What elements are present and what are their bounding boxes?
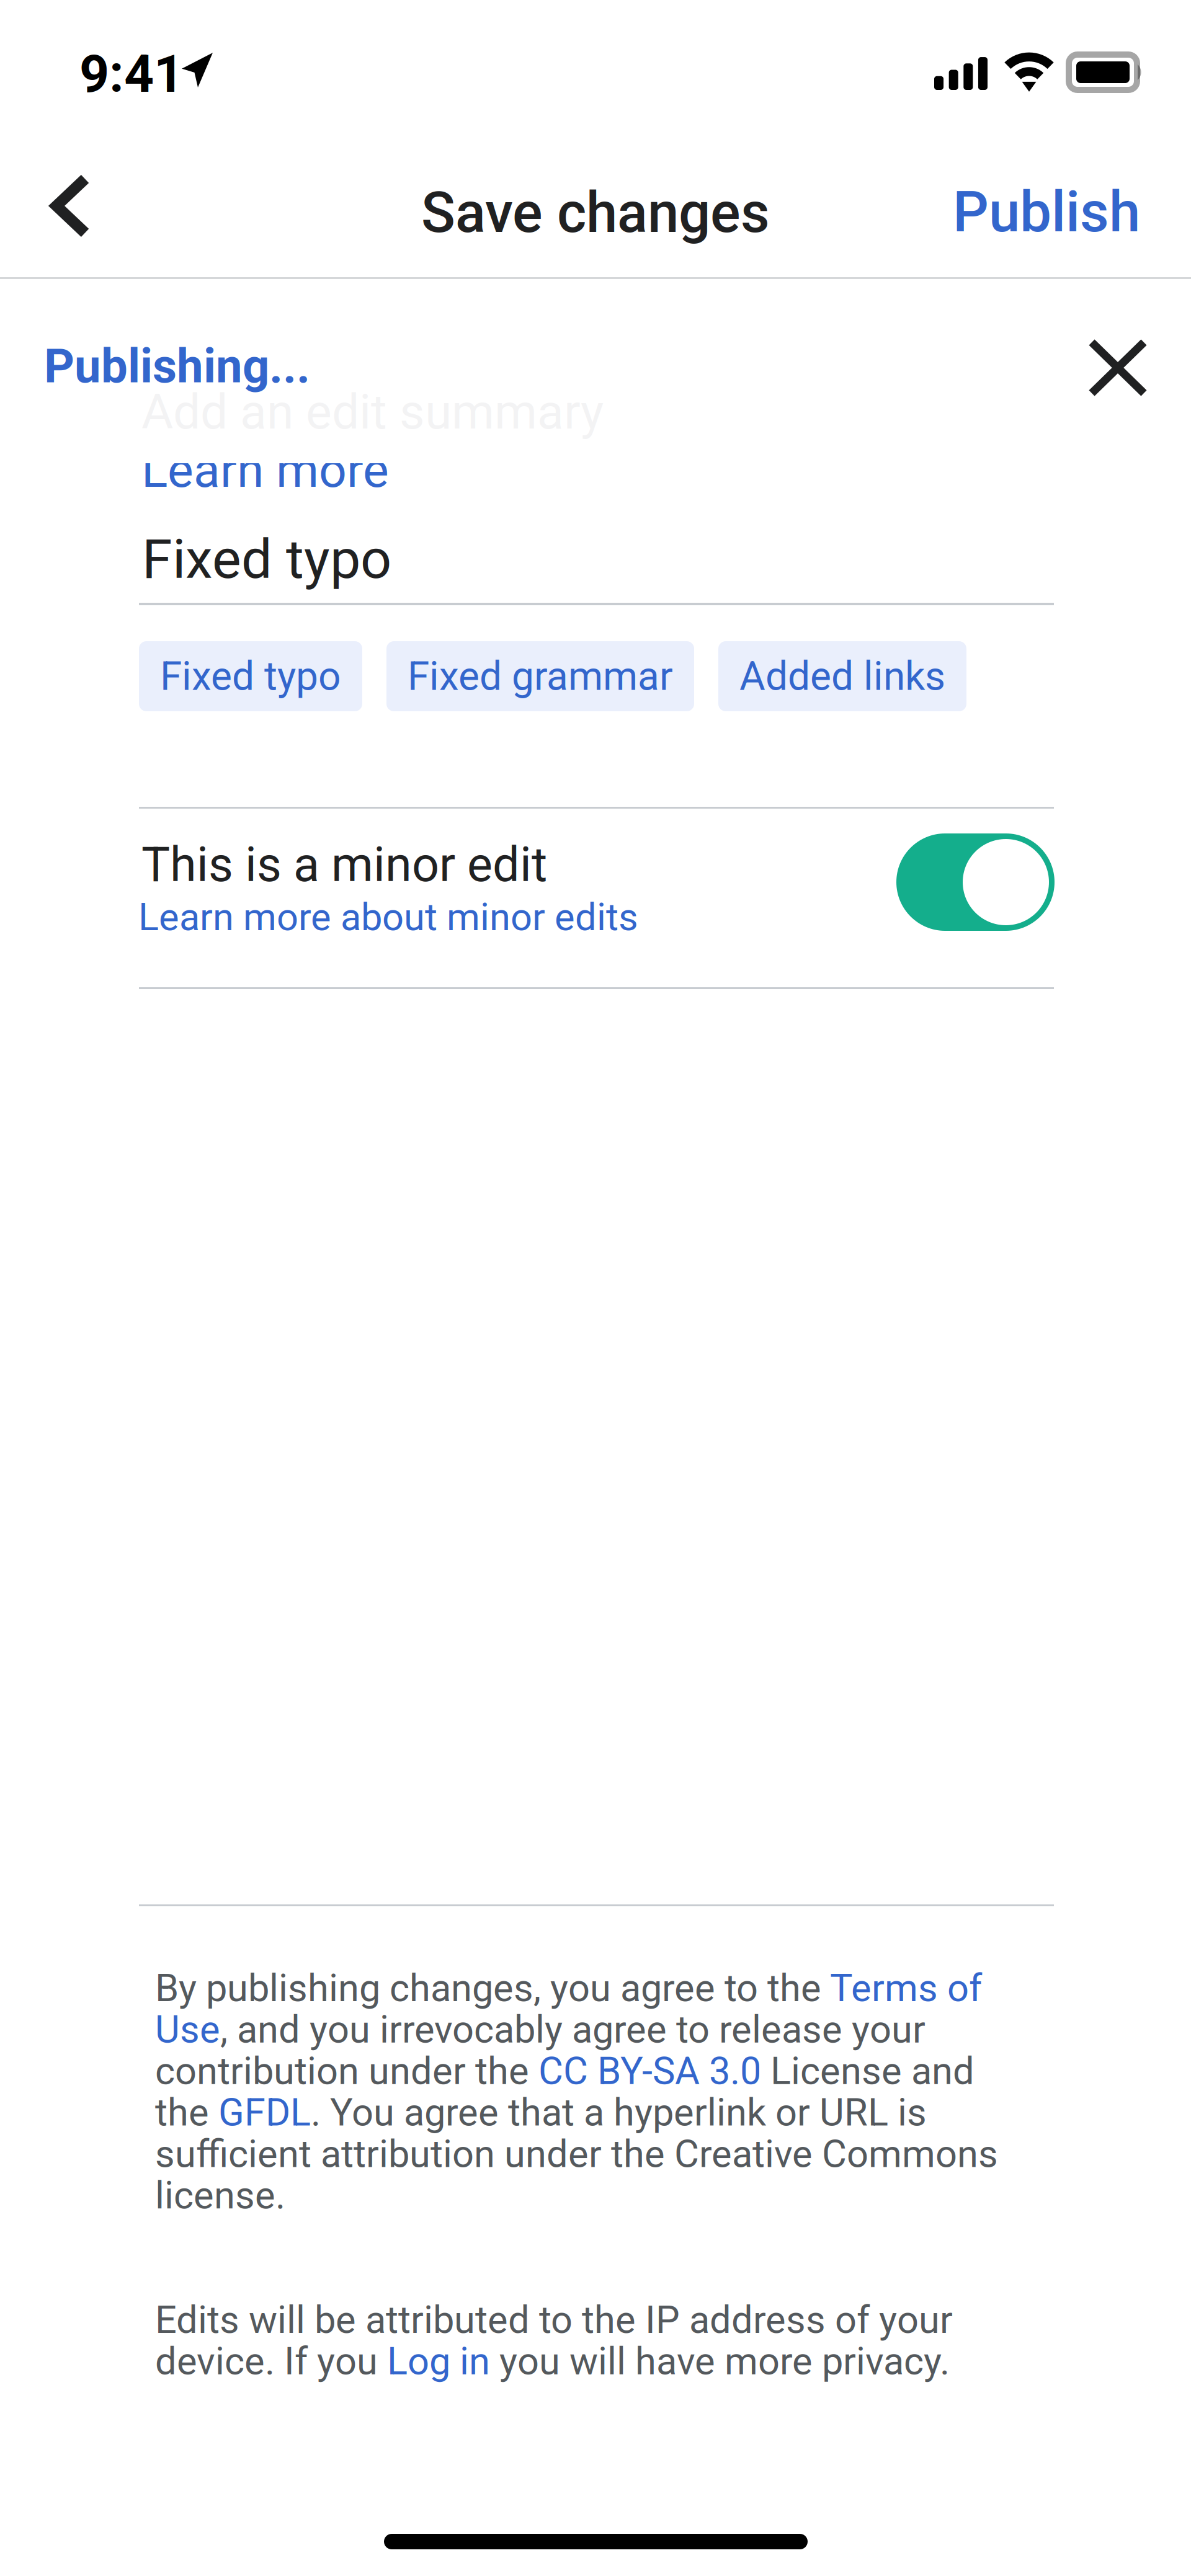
button[interactable]: Fixed typo (139, 641, 362, 711)
staticText: Added links (739, 653, 945, 700)
button[interactable]: Cancel (1056, 309, 1180, 427)
staticText: Save changes (421, 180, 770, 246)
staticText: This is a minor edit (141, 837, 547, 893)
staticText: Publish (953, 179, 1140, 245)
button[interactable]: Back (4, 139, 138, 273)
staticText: Learn more about minor edits (138, 895, 638, 939)
staticText: Publishing... (44, 339, 310, 394)
staticText: Fixed typo (142, 527, 391, 591)
button[interactable]: Fixed grammar (386, 641, 694, 711)
button[interactable]: Learn more about minor edits (138, 889, 638, 946)
staticText: By publishing changes, you agree to the … (155, 1966, 998, 2218)
staticText: 9:41 (79, 43, 184, 104)
staticText: Edits will be attributed to the IP addre… (155, 2298, 953, 2384)
staticText: Fixed typo (160, 653, 341, 700)
button[interactable]: Added links (718, 641, 966, 711)
staticText: Fixed grammar (408, 653, 673, 700)
staticText: Learn more (141, 442, 389, 499)
button[interactable]: Learn more (141, 442, 389, 499)
staticText: Add an edit summary (141, 383, 604, 440)
button[interactable]: Publish (926, 146, 1167, 279)
button[interactable]: This is a minor edit (896, 833, 1055, 931)
